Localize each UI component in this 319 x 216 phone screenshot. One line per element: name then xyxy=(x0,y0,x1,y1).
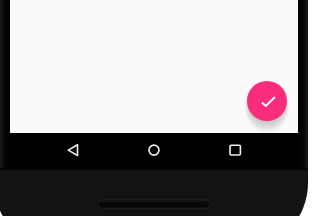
button[interactable]: Done xyxy=(247,81,287,121)
button[interactable]: Home xyxy=(135,133,173,168)
button[interactable]: Back xyxy=(54,133,92,168)
button[interactable]: Recent apps xyxy=(216,133,254,168)
